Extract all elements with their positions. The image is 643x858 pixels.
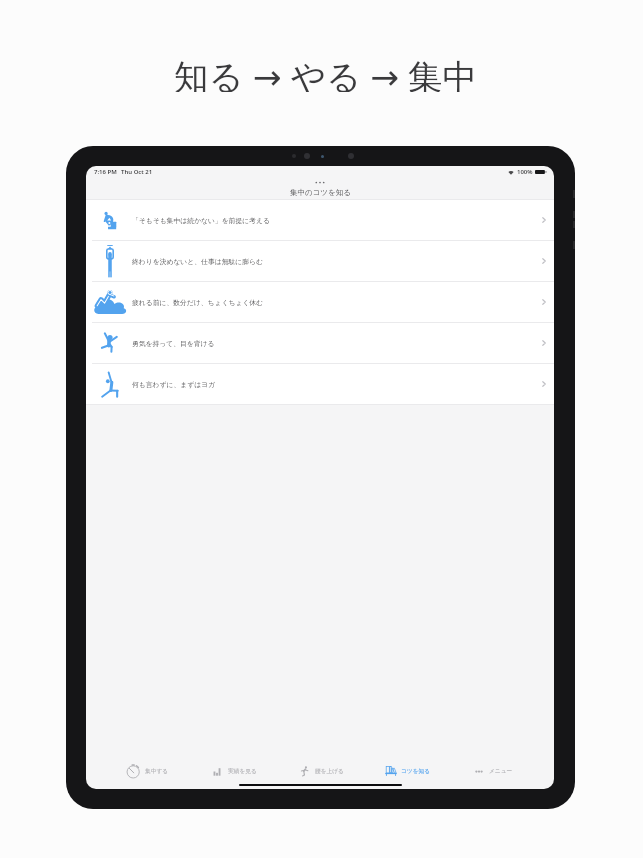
staticText: 腰を上げる bbox=[315, 768, 344, 775]
button[interactable]: 疲れる前に、数分だけ、ちょくちょく休む bbox=[86, 282, 554, 322]
button[interactable]: 集中する bbox=[104, 755, 191, 787]
button[interactable]: コツを知る bbox=[364, 755, 450, 787]
staticText: 何も言わずに、まずはヨガ bbox=[132, 380, 215, 389]
staticText: 疲れる前に、数分だけ、ちょくちょく休む bbox=[132, 298, 264, 307]
button[interactable]: 「そもそも集中は続かない」を前提に考える bbox=[86, 200, 554, 240]
staticText: 集中のコツを知る bbox=[290, 188, 351, 197]
button[interactable]: 実績を見る bbox=[191, 755, 278, 787]
staticText: 勇気を持って、目を背ける bbox=[132, 339, 215, 348]
staticText: 集中する bbox=[145, 768, 169, 775]
staticText: 7:16 PM bbox=[94, 168, 117, 176]
staticText: 「そもそも集中は続かない」を前提に考える bbox=[132, 216, 270, 225]
button[interactable]: 勇気を持って、目を背ける bbox=[86, 323, 554, 363]
staticText: コツを知る bbox=[401, 768, 430, 775]
staticText: 終わりを決めないと、仕事は無駄に膨らむ bbox=[132, 257, 263, 266]
staticText: 実績を見る bbox=[228, 768, 257, 775]
button[interactable]: メニュー bbox=[450, 755, 536, 787]
staticText: Thu Oct 21 bbox=[121, 168, 153, 176]
button[interactable]: 何も言わずに、まずはヨガ bbox=[86, 364, 554, 404]
staticText: 100% bbox=[517, 168, 533, 176]
button[interactable]: 終わりを決めないと、仕事は無駄に膨らむ bbox=[86, 241, 554, 281]
staticText: メニュー bbox=[489, 768, 513, 775]
button[interactable]: 腰を上げる bbox=[278, 755, 364, 787]
staticText: 知る → やる → 集中 bbox=[174, 52, 478, 92]
